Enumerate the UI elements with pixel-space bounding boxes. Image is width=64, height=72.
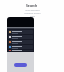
button[interactable] (9, 40, 32, 44)
button[interactable] (9, 30, 32, 34)
button[interactable] (14, 63, 27, 67)
button[interactable] (9, 35, 32, 39)
staticText: Search (26, 3, 38, 8)
button[interactable] (9, 45, 32, 49)
button[interactable] (9, 50, 32, 51)
staticText: Find anything instantly across apps (22, 9, 43, 18)
